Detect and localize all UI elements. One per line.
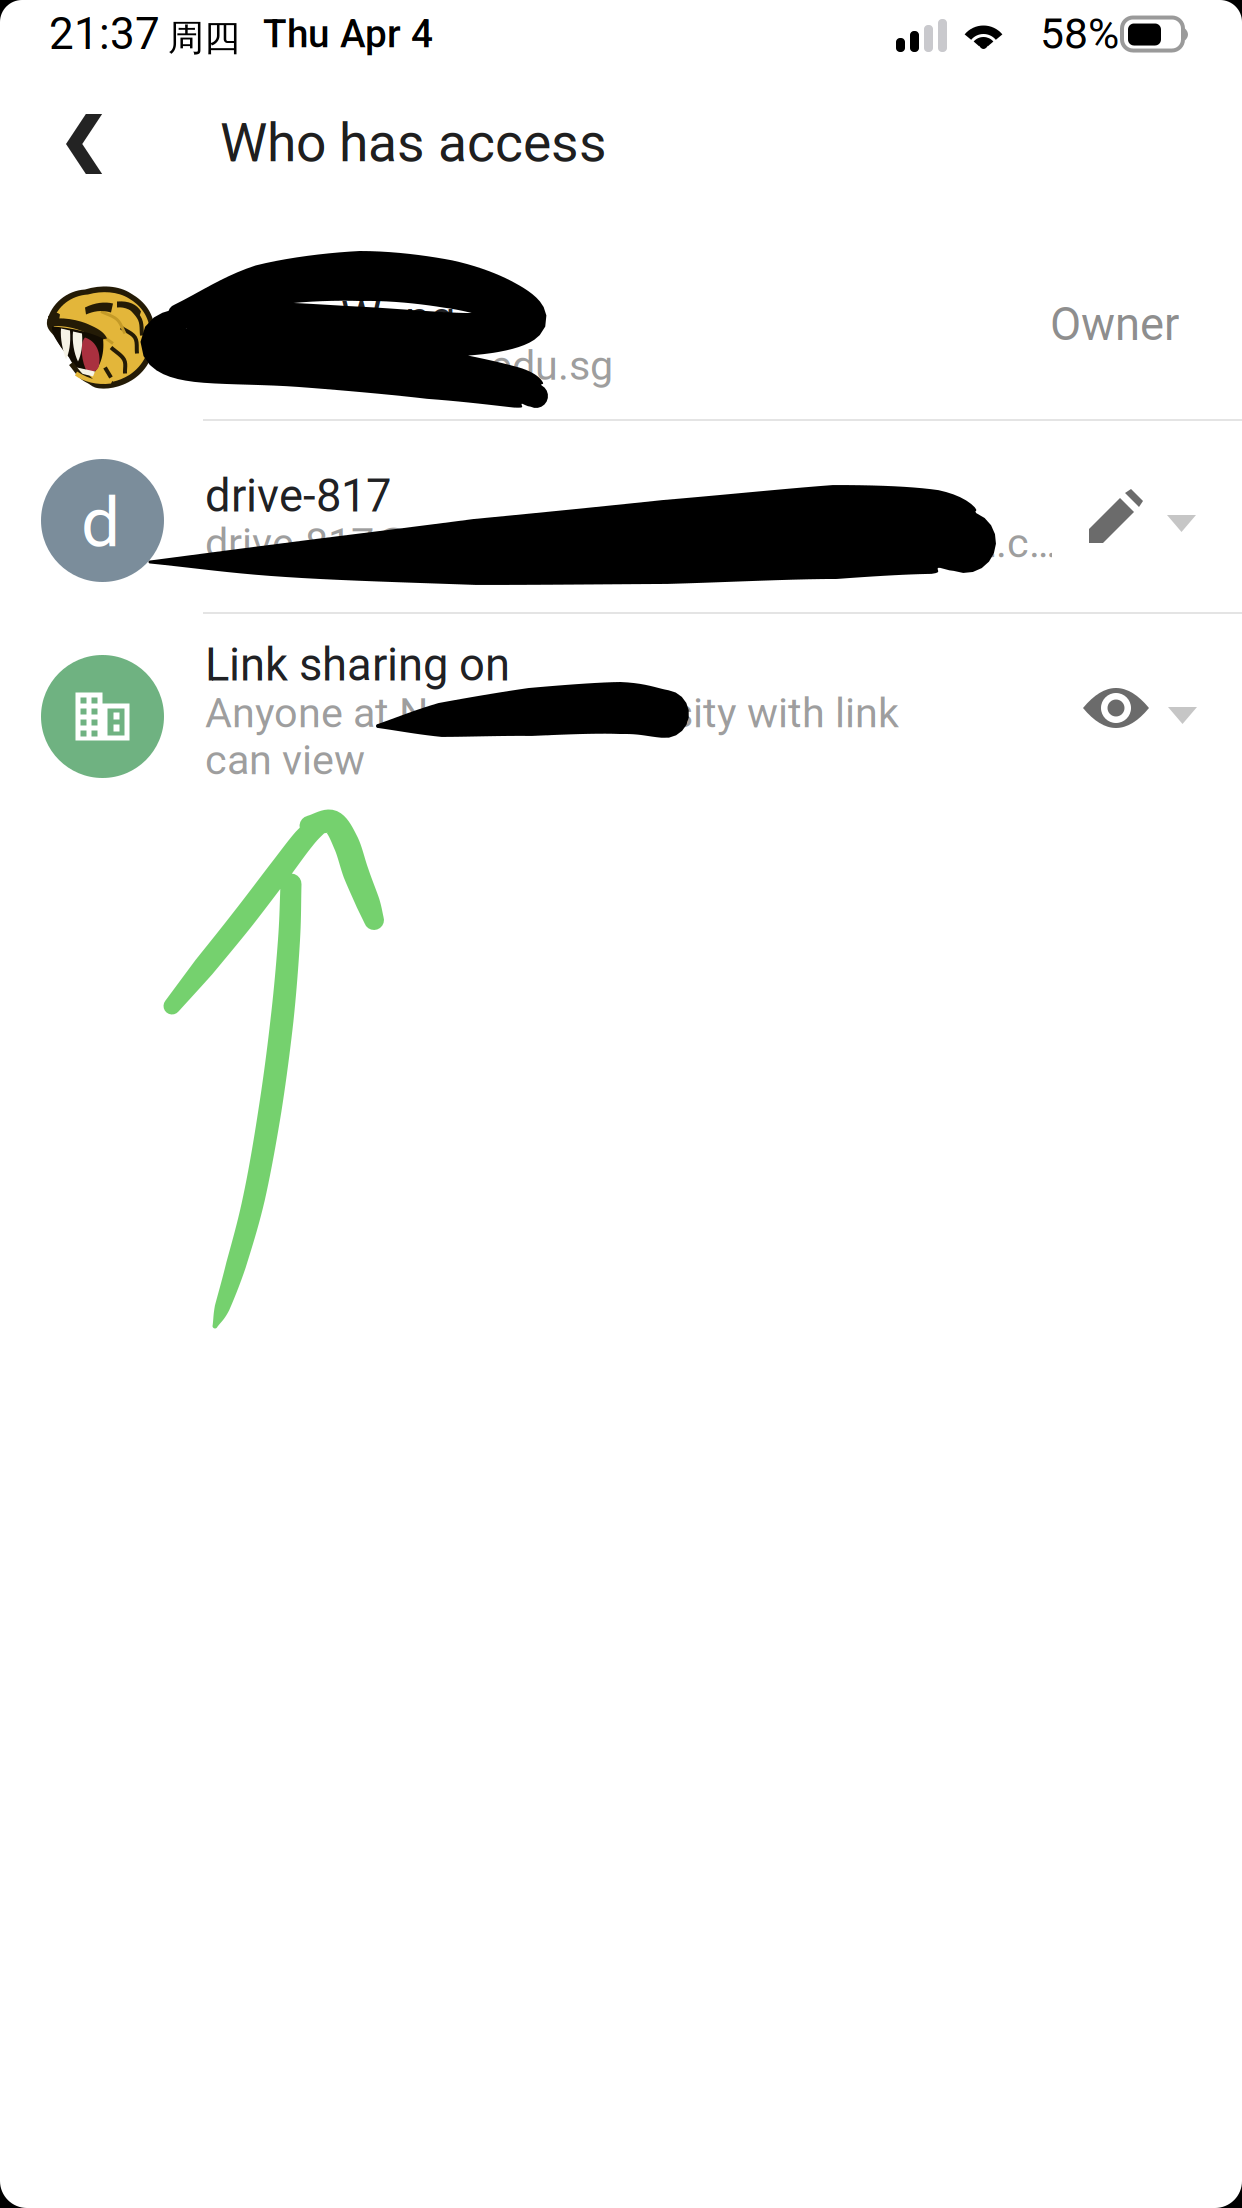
button[interactable]: Ziqing Wang bbox=[0, 239, 1242, 418]
button[interactable]: Back bbox=[48, 84, 166, 206]
staticText: 58% bbox=[1040, 9, 1119, 59]
staticText: Anyone at Nanyang Univesity with link bbox=[205, 689, 899, 737]
staticText: d bbox=[81, 482, 120, 563]
button[interactable]: Change access for drive-817, currently c… bbox=[1052, 461, 1242, 581]
staticText: Link sharing on bbox=[205, 638, 510, 691]
button[interactable]: Change link sharing access, currently ca… bbox=[1052, 650, 1242, 770]
staticText: Thu Apr 4 bbox=[263, 11, 433, 57]
staticText: can view bbox=[205, 736, 365, 784]
staticText: 21:37 bbox=[49, 8, 160, 60]
staticText: Who has access bbox=[220, 112, 607, 174]
staticText: drive-817@shared-drv.iam.gserviceaccount… bbox=[205, 519, 1057, 567]
staticText: drive-817 bbox=[205, 469, 391, 522]
button[interactable]: d bbox=[0, 421, 1242, 613]
staticText: 周四 bbox=[168, 15, 240, 61]
staticText: Ziqing Wang bbox=[205, 292, 455, 345]
staticText: Owner bbox=[1050, 298, 1179, 351]
button[interactable]: Link sharing on bbox=[0, 614, 1242, 802]
staticText: zw0001@e.ntu.edu.sg bbox=[205, 341, 613, 390]
